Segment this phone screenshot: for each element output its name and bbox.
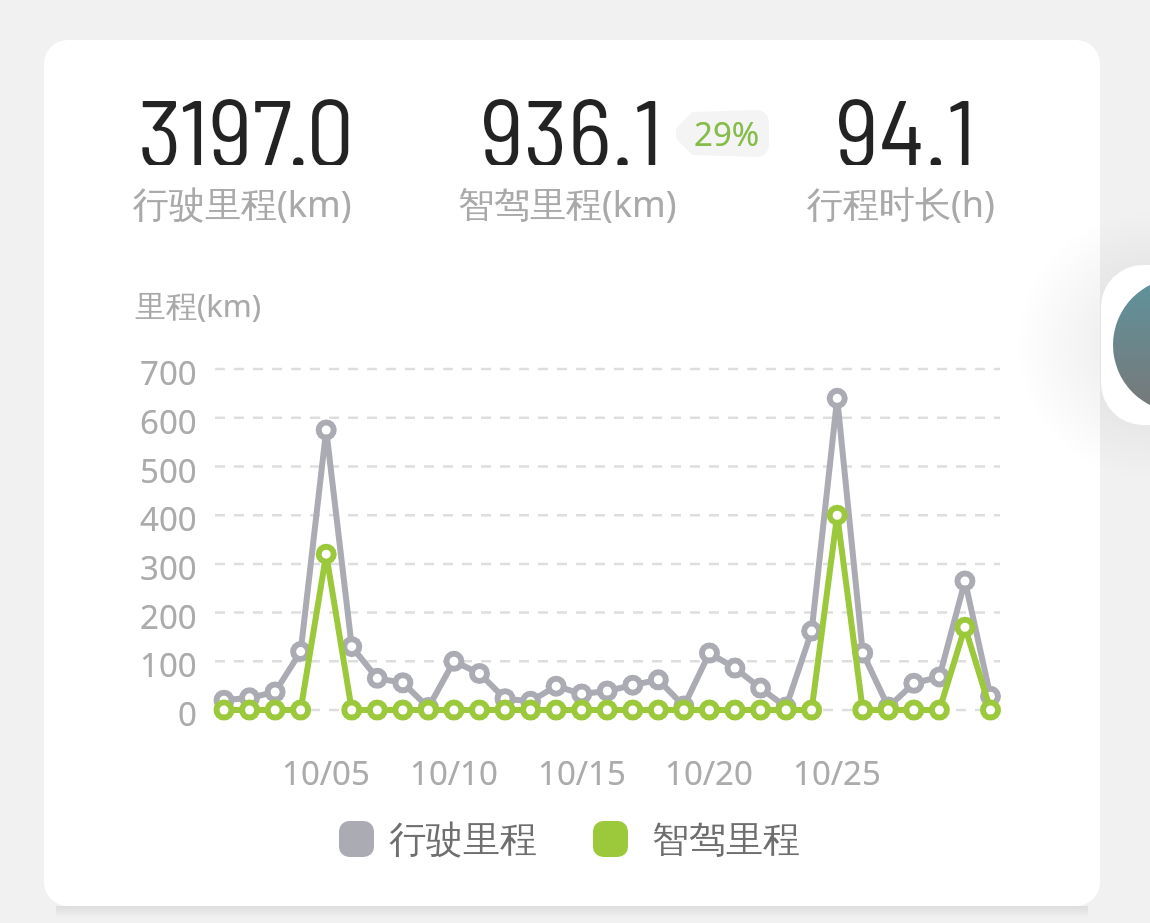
staticText: 10/10: [410, 750, 498, 790]
staticText: 10/20: [665, 750, 753, 790]
staticText: 智驾里程: [652, 816, 800, 862]
staticText: 936.1: [480, 73, 663, 165]
staticText: 200: [140, 594, 197, 636]
button[interactable]: 29%: [674, 110, 769, 157]
staticText: 3197.0: [138, 73, 355, 165]
staticText: 里程(km): [135, 284, 262, 326]
staticText: 行驶里程: [389, 816, 537, 862]
staticText: 行驶里程(km): [133, 179, 352, 228]
staticText: 智驾里程(km): [458, 179, 677, 228]
staticText: 700: [140, 350, 197, 392]
staticText: 10/05: [282, 750, 370, 790]
staticText: 29%: [694, 111, 760, 156]
staticText: 10/25: [793, 750, 881, 790]
button[interactable]: [1101, 265, 1150, 425]
staticText: 600: [140, 399, 197, 441]
staticText: 500: [140, 448, 197, 490]
staticText: 94.1: [835, 73, 976, 165]
staticText: 300: [140, 545, 197, 587]
staticText: 100: [140, 642, 197, 684]
staticText: 400: [140, 496, 197, 538]
staticText: 0: [178, 691, 197, 733]
staticText: 10/15: [538, 750, 626, 790]
staticText: 行程时长(h): [807, 179, 995, 228]
